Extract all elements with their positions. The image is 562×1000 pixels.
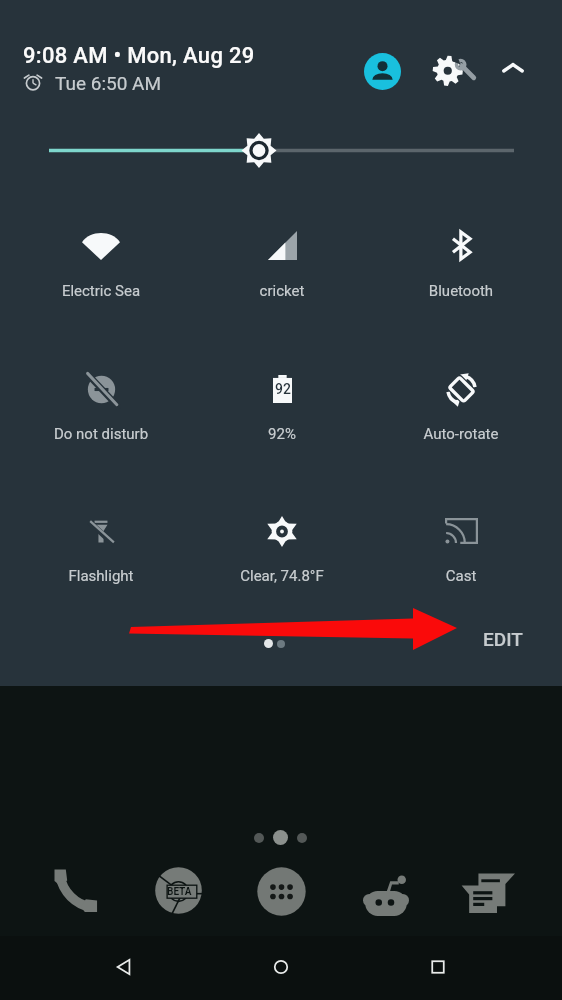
staticText: 9:08 AM • Mon, Aug 29 [23, 43, 255, 69]
button[interactable]: Electric Sea [13, 197, 189, 309]
staticText: cricket [194, 282, 370, 300]
button[interactable]: Settings [429, 52, 485, 108]
button[interactable]: Reddit [361, 871, 411, 921]
button[interactable]: Do not disturb [13, 341, 189, 453]
button[interactable]: EDIT [483, 628, 523, 650]
button[interactable]: Clear, 74.8°F [194, 483, 370, 595]
staticText: Cast [373, 567, 549, 585]
staticText: 92% [194, 425, 370, 443]
staticText: BETA [167, 886, 192, 898]
button[interactable]: 92 [194, 341, 370, 453]
button[interactable]: Auto-rotate [373, 341, 549, 453]
button[interactable]: Recents [422, 951, 454, 983]
button[interactable]: Browser [152, 864, 205, 917]
button[interactable]: Messages [459, 868, 517, 926]
button[interactable]: Phone [51, 867, 98, 914]
staticText: Electric Sea [13, 282, 189, 300]
staticText: EDIT [483, 628, 523, 650]
button[interactable]: Back [108, 951, 140, 983]
staticText: Do not disturb [13, 425, 189, 443]
staticText: Flashlight [13, 567, 189, 585]
button[interactable]: Collapse [497, 55, 529, 87]
staticText: Tue 6:50 AM [55, 72, 162, 94]
staticText: Auto-rotate [373, 425, 549, 443]
staticText: 92 [275, 381, 291, 397]
button[interactable]: cricket [194, 197, 370, 309]
button[interactable]: Bluetooth [373, 197, 549, 309]
button[interactable]: Flashlight [13, 483, 189, 595]
button[interactable]: Brightness [30, 130, 532, 172]
button[interactable]: User profile [364, 53, 401, 90]
button[interactable]: Home [265, 951, 297, 983]
staticText: Bluetooth [373, 282, 549, 300]
button[interactable]: All apps [252, 862, 311, 921]
staticText: Clear, 74.8°F [194, 567, 370, 585]
button[interactable]: Cast [373, 483, 549, 595]
